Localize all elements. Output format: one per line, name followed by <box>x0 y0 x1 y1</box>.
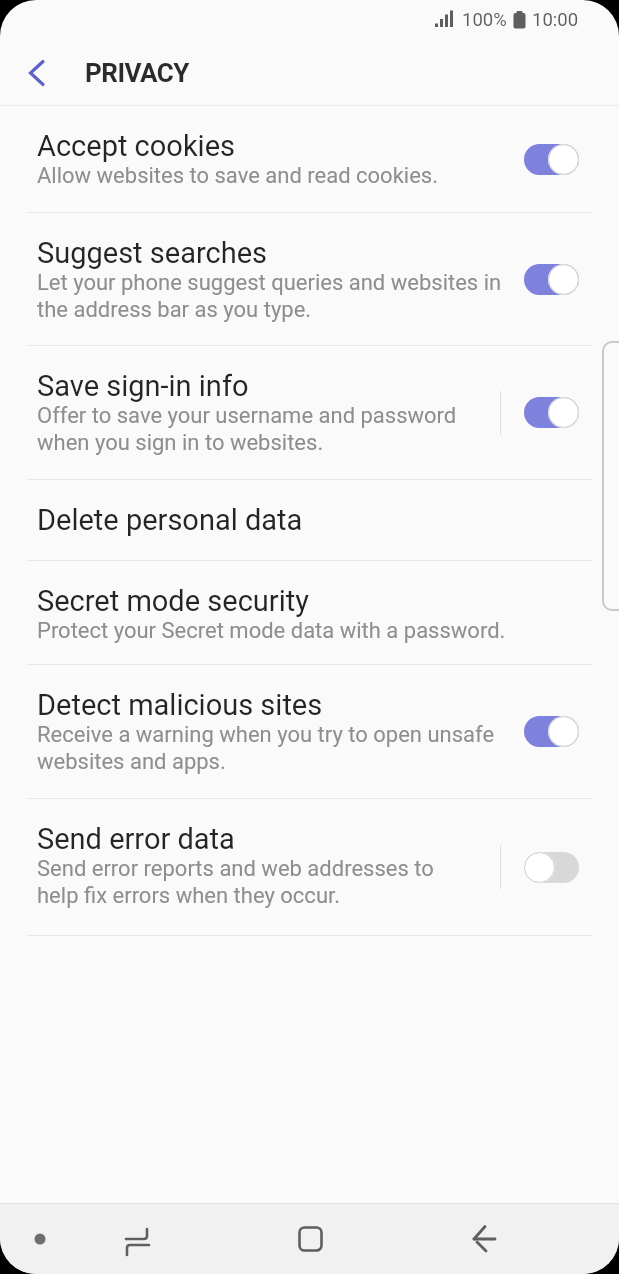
staticText: 10:00 <box>532 9 579 31</box>
button[interactable] <box>115 1217 159 1261</box>
staticText: Protect your Secret mode data with a pas… <box>37 618 506 644</box>
button[interactable] <box>524 716 579 747</box>
staticText: Delete personal data <box>37 503 303 537</box>
staticText: Accept cookies <box>37 129 235 163</box>
staticText: PRIVACY <box>85 58 189 88</box>
staticText: Let your phone suggest queries and websi… <box>37 270 502 322</box>
button[interactable] <box>18 51 62 95</box>
staticText: 100% <box>462 9 507 31</box>
button[interactable] <box>462 1217 506 1261</box>
button[interactable]: Detect malicious sites <box>0 665 619 798</box>
staticText: Save sign-in info <box>37 369 249 403</box>
staticText: Send error reports and web addresses to … <box>37 856 434 908</box>
staticText: Send error data <box>37 822 235 856</box>
button[interactable] <box>524 852 579 883</box>
button[interactable]: Save sign-in info <box>0 346 619 479</box>
button[interactable] <box>288 1217 332 1261</box>
button[interactable] <box>524 144 579 175</box>
staticText: Receive a warning when you try to open u… <box>37 722 495 774</box>
staticText: Suggest searches <box>37 236 267 270</box>
staticText: Secret mode security <box>37 584 309 618</box>
staticText: Allow websites to save and read cookies. <box>37 163 438 189</box>
button[interactable]: Delete personal data <box>0 480 619 560</box>
staticText: Offer to save your username and password… <box>37 403 457 455</box>
button[interactable] <box>524 264 579 295</box>
staticText: Detect malicious sites <box>37 688 323 722</box>
button[interactable] <box>524 397 579 428</box>
button[interactable]: Send error data <box>0 799 619 935</box>
button[interactable]: Accept cookies <box>0 106 619 212</box>
button[interactable]: Suggest searches <box>0 213 619 345</box>
button[interactable] <box>34 1233 46 1245</box>
button[interactable]: Secret mode security <box>0 561 619 664</box>
